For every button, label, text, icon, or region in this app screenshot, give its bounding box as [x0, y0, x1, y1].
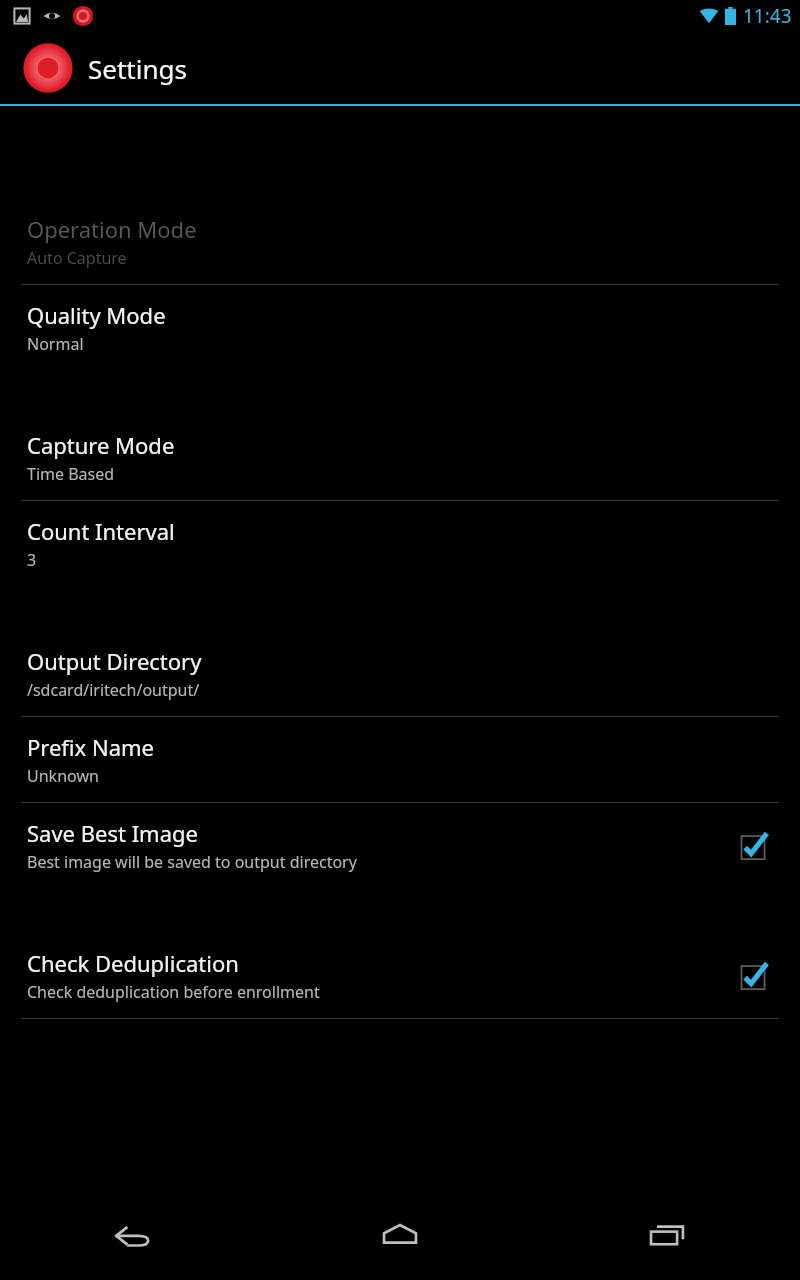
- button[interactable]: Home: [266, 1190, 533, 1280]
- staticText: Unknown: [27, 765, 99, 787]
- button[interactable]: Back: [0, 1190, 266, 1280]
- staticText: Settings: [88, 51, 187, 86]
- staticText: Output Directory: [27, 646, 202, 676]
- staticText: Auto Capture: [27, 247, 127, 269]
- staticText: 3: [27, 549, 37, 571]
- button[interactable]: Check Deduplication: [0, 933, 800, 1018]
- staticText: Best image will be saved to output direc…: [27, 851, 357, 873]
- button[interactable]: Quality Mode: [0, 285, 800, 370]
- staticText: Check Deduplication: [27, 948, 239, 978]
- button[interactable]: Output Directory: [0, 631, 800, 716]
- button[interactable]: Toggle Save Best Image: [733, 826, 773, 866]
- staticText: Check deduplication before enrollment: [27, 981, 320, 1003]
- staticText: Time Based: [27, 463, 115, 485]
- staticText: Capture Mode: [27, 430, 175, 460]
- button[interactable]: Prefix Name: [0, 717, 800, 802]
- staticText: /sdcard/iritech/output/: [27, 679, 200, 701]
- staticText: 11:43: [743, 3, 792, 29]
- button[interactable]: Capture Mode: [0, 415, 800, 500]
- button[interactable]: Save Best Image: [0, 803, 800, 888]
- staticText: Prefix Name: [27, 732, 155, 762]
- button[interactable]: Count Interval: [0, 501, 800, 586]
- staticText: Normal: [27, 333, 84, 355]
- button[interactable]: Recent apps: [533, 1190, 800, 1280]
- staticText: Save Best Image: [27, 818, 198, 848]
- button[interactable]: Toggle Check Deduplication: [733, 956, 773, 996]
- staticText: Quality Mode: [27, 300, 166, 330]
- staticText: Count Interval: [27, 516, 175, 546]
- button[interactable]: Operation Mode: [0, 199, 800, 284]
- staticText: Operation Mode: [27, 214, 197, 244]
